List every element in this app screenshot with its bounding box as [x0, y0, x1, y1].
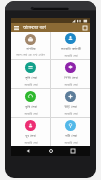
- staticText: সরকারি সেবা: [64, 82, 78, 87]
- staticText: সরকারি সেবা: [64, 111, 78, 116]
- button[interactable]: নারী সেবা: [51, 118, 90, 146]
- button[interactable]: স্বাস্থ্য সেবা: [51, 89, 90, 117]
- staticText: সরকারি সেবা: [64, 53, 78, 58]
- staticText: সকল সেবা এবং তথ্য এখানে: [16, 52, 45, 57]
- button[interactable]: যুব সেবা: [11, 118, 50, 146]
- button[interactable]: শিক্ষা সেবা: [51, 60, 90, 88]
- staticText: আবেদনের ধরণ: [23, 24, 46, 31]
- button[interactable]: Open navigation menu: [13, 24, 20, 31]
- button[interactable]: সরকারি কর্মচারী: [51, 32, 90, 59]
- staticText: সরকারি সেবা: [24, 82, 38, 87]
- staticText: নাগরিক: [26, 47, 36, 51]
- button[interactable]: Home: [45, 146, 57, 156]
- staticText: শিক্ষা সেবা: [64, 75, 78, 81]
- button[interactable]: More options: [81, 24, 88, 31]
- button[interactable]: Back: [22, 146, 34, 156]
- staticText: যুব সেবা: [25, 133, 36, 139]
- staticText: ভূমি সেবা: [25, 75, 37, 81]
- staticText: সরকারি সেবা: [24, 111, 38, 116]
- button[interactable]: কৃষি সেবা: [11, 89, 50, 117]
- button[interactable]: ভূমি সেবা: [11, 60, 50, 88]
- staticText: সরকারি সেবা: [24, 140, 38, 145]
- staticText: সরকারি সেবা: [64, 140, 78, 145]
- button[interactable]: Recent apps: [67, 146, 79, 156]
- button[interactable]: নাগরিক: [11, 32, 50, 59]
- staticText: সরকারি কর্মচারী: [61, 46, 81, 52]
- staticText: কৃষি সেবা: [25, 104, 37, 110]
- staticText: স্বাস্থ্য সেবা: [64, 104, 77, 110]
- staticText: নারী সেবা: [65, 133, 77, 139]
